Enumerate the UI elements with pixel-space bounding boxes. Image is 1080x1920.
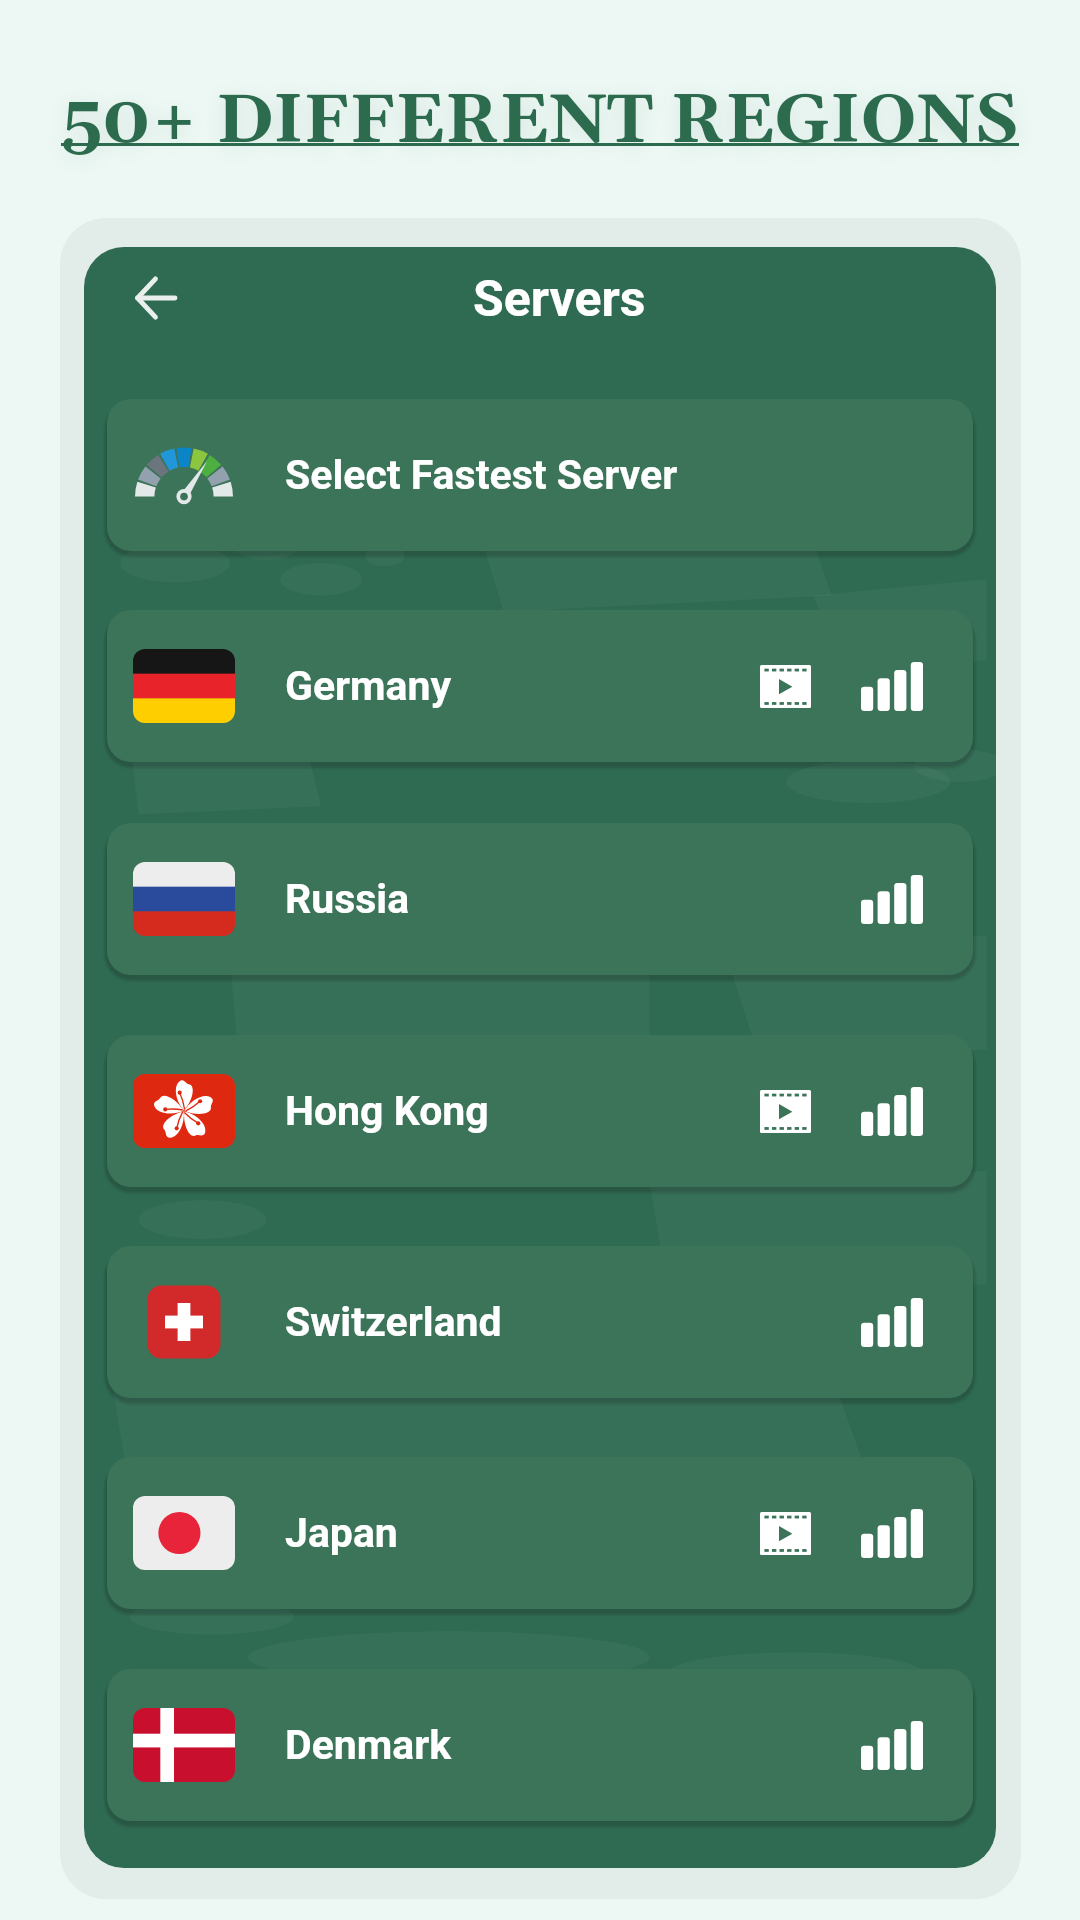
staticText: Switzerland	[285, 1298, 502, 1346]
button[interactable]: Russia	[107, 823, 973, 975]
button[interactable]: Hong Kong	[107, 1035, 973, 1187]
button[interactable]: Switzerland	[107, 1246, 973, 1398]
staticText: Japan	[285, 1509, 398, 1557]
button[interactable]: Denmark	[107, 1669, 973, 1821]
button[interactable]: Japan	[107, 1457, 973, 1609]
button[interactable]: Germany	[107, 610, 973, 762]
button[interactable]: Select Fastest Server	[107, 399, 973, 551]
button[interactable]: Back	[119, 261, 192, 334]
staticText: Germany	[285, 662, 452, 710]
staticText: Denmark	[285, 1721, 452, 1769]
staticText: 50+ DIFFERENT REGIONS	[61, 78, 1019, 165]
staticText: Servers	[473, 270, 646, 329]
staticText: Select Fastest Server	[285, 451, 678, 499]
staticText: Russia	[285, 875, 410, 923]
staticText: Hong Kong	[285, 1087, 489, 1135]
